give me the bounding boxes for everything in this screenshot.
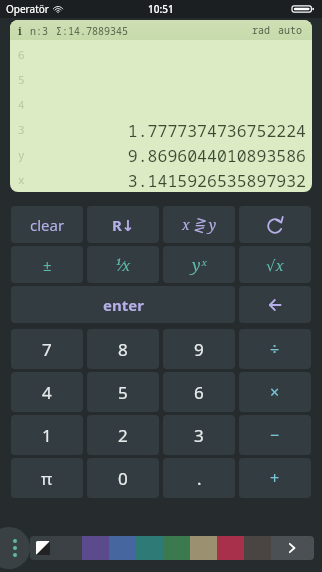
staticText: n:3 (30, 24, 48, 38)
button[interactable]: y (10, 142, 312, 167)
staticText: 4 (18, 97, 25, 112)
staticText: 1.7777374736752224 (127, 119, 306, 141)
button[interactable]: More themes (271, 536, 314, 560)
button[interactable]: x ⋛ y (163, 206, 235, 243)
button[interactable]: 0 (87, 458, 159, 498)
staticText: 1 (42, 424, 52, 447)
staticText: + (270, 467, 280, 489)
button[interactable]: 7 (11, 329, 83, 369)
staticText: 6 (194, 381, 204, 404)
staticText: enter (103, 295, 144, 315)
staticText: Operatör (6, 2, 49, 16)
button[interactable]: Theme 0 (30, 536, 56, 560)
staticText: 2 (118, 424, 128, 447)
button[interactable]: Menu (0, 527, 30, 569)
staticText: yˣ (192, 254, 207, 276)
button[interactable]: 2 (87, 415, 159, 455)
button[interactable]: 4 (11, 372, 83, 412)
button[interactable]: x (10, 167, 312, 192)
button[interactable]: undo (239, 206, 311, 243)
staticText: x (18, 172, 25, 187)
staticText: ÷ (270, 338, 280, 360)
staticText: − (270, 424, 280, 446)
button[interactable]: 8 (87, 329, 159, 369)
staticText: ± (43, 255, 52, 275)
staticText: 7 (42, 338, 52, 361)
button[interactable]: π (11, 458, 83, 498)
staticText: ¹⁄x (115, 255, 131, 275)
button[interactable]: R↓ (87, 206, 159, 243)
staticText: × (270, 381, 280, 403)
staticText: 3 (194, 424, 204, 447)
staticText: clear (30, 215, 65, 235)
staticText: 4 (42, 381, 52, 404)
staticText: π (41, 467, 53, 490)
button[interactable]: 6 (163, 372, 235, 412)
staticText: y (18, 147, 25, 162)
staticText: 3.1415926535897932 (127, 169, 306, 191)
staticText: 10:51 (148, 2, 174, 16)
button[interactable]: ¹⁄x (87, 246, 159, 283)
staticText: Σ:14.7889345 (56, 24, 128, 38)
button[interactable]: rad (252, 23, 270, 37)
button[interactable]: √x (239, 246, 311, 283)
button[interactable]: . (163, 458, 235, 498)
button[interactable]: 9 (163, 329, 235, 369)
button[interactable]: 3 (163, 415, 235, 455)
staticText: 8 (118, 338, 128, 361)
button[interactable]: auto (278, 23, 302, 37)
staticText: 9.8696044010893586 (127, 144, 306, 166)
button[interactable]: Backspace (239, 286, 311, 323)
button[interactable]: i (18, 23, 22, 38)
staticText: 5 (118, 381, 128, 404)
staticText: √x (266, 255, 284, 275)
button[interactable]: 5 (87, 372, 159, 412)
button[interactable]: ÷ (239, 329, 311, 369)
staticText: R↓ (112, 215, 135, 235)
staticText: 5 (18, 72, 25, 87)
button[interactable]: yˣ (163, 246, 235, 283)
staticText: . (197, 467, 202, 490)
staticText: 3 (18, 122, 25, 137)
button[interactable]: − (239, 415, 311, 455)
button[interactable]: + (239, 458, 311, 498)
button[interactable]: 3 (10, 117, 312, 142)
button[interactable]: clear (11, 206, 83, 243)
button[interactable]: × (239, 372, 311, 412)
staticText: 6 (18, 47, 25, 62)
staticText: x ⋛ y (182, 215, 217, 234)
button[interactable]: enter (11, 286, 235, 323)
staticText: 9 (194, 338, 204, 361)
button[interactable]: 1 (11, 415, 83, 455)
button[interactable]: ± (11, 246, 83, 283)
staticText: 0 (118, 467, 128, 490)
